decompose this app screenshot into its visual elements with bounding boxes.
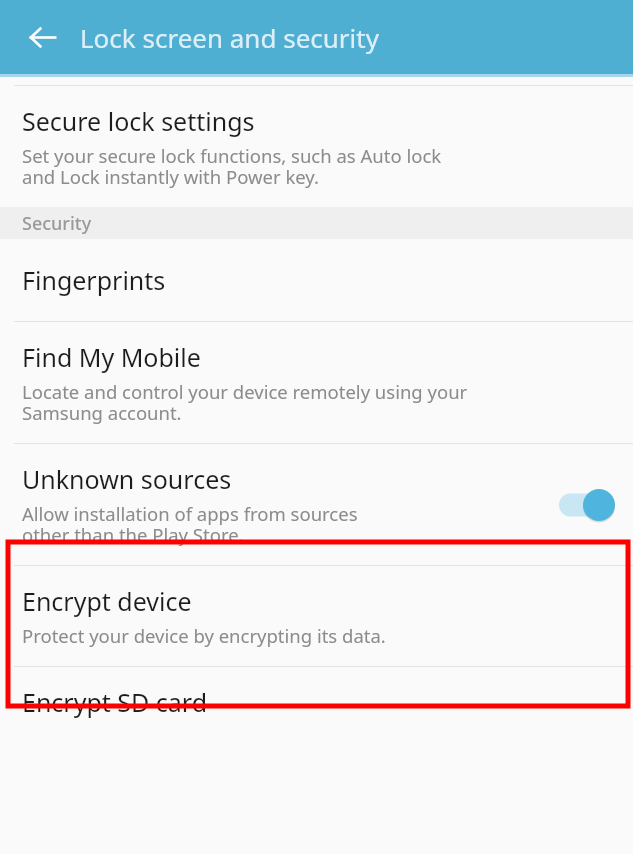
button[interactable]: Encrypt device <box>0 566 633 666</box>
button[interactable]: Fingerprints <box>0 239 633 321</box>
staticText: Find My Mobile <box>22 340 201 374</box>
button[interactable]: Find My Mobile <box>0 322 633 443</box>
staticText: Allow installation of apps from sources … <box>22 501 358 547</box>
staticText: Secure lock settings <box>22 104 255 138</box>
staticText: Lock screen and security <box>80 20 379 55</box>
button[interactable]: Encrypt SD card <box>0 667 633 743</box>
button[interactable]: Secure lock settings <box>0 86 633 207</box>
button[interactable]: Unknown sources <box>0 444 633 565</box>
staticText: Fingerprints <box>22 263 166 297</box>
staticText: Security <box>22 211 92 236</box>
staticText: Unknown sources <box>22 462 232 496</box>
button[interactable]: Unknown sources toggle <box>559 489 615 521</box>
button[interactable]: Back <box>16 11 68 63</box>
staticText: Set your secure lock functions, such as … <box>22 143 442 189</box>
staticText: Encrypt device <box>22 584 192 618</box>
staticText: Locate and control your device remotely … <box>22 379 468 425</box>
staticText: Encrypt SD card <box>22 685 208 719</box>
staticText: Protect your device by encrypting its da… <box>22 623 386 648</box>
